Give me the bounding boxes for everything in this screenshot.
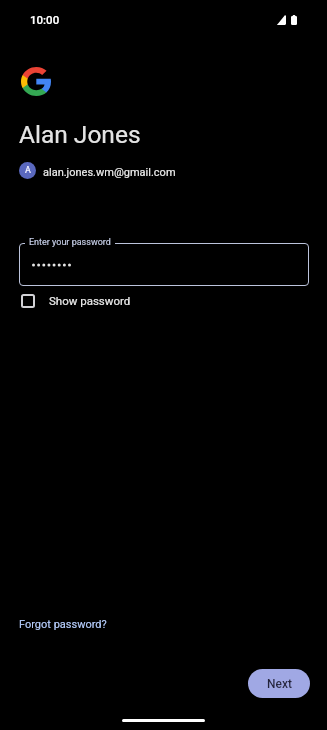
staticText: A xyxy=(25,165,31,176)
button[interactable]: Enter your password xyxy=(19,243,309,286)
button[interactable]: Next xyxy=(248,669,310,698)
other: Cellular signal xyxy=(276,15,286,25)
staticText: Enter your password xyxy=(29,237,111,248)
staticText: Next xyxy=(267,677,292,691)
staticText: Alan Jones xyxy=(19,120,141,149)
staticText: alan.jones.wm@gmail.com xyxy=(43,166,176,179)
staticText: Forgot password? xyxy=(19,618,107,631)
other: Battery xyxy=(291,15,297,25)
staticText: Show password xyxy=(49,294,131,307)
button[interactable]: A xyxy=(19,162,176,179)
button[interactable]: Show password xyxy=(19,291,133,309)
button[interactable]: Forgot password? xyxy=(11,610,115,639)
staticText: 10:00 xyxy=(30,13,60,26)
